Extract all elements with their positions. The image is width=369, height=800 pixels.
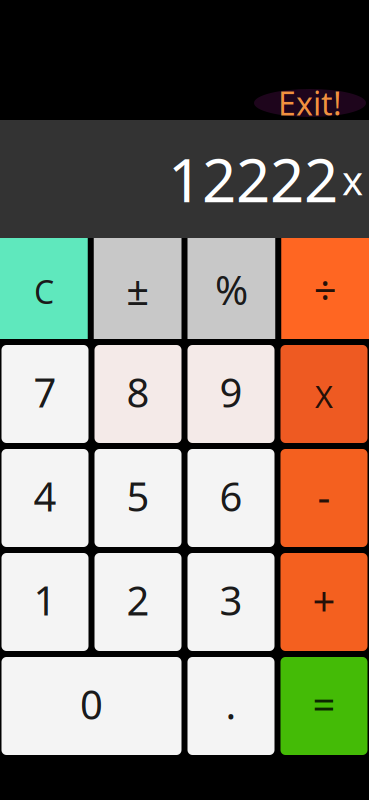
button[interactable]: 6 [187, 449, 274, 547]
staticText: 1 [33, 573, 56, 627]
staticText: 7 [33, 365, 56, 419]
button[interactable]: 5 [94, 449, 181, 547]
button[interactable]: - [280, 449, 367, 547]
staticText: . [225, 677, 236, 731]
button[interactable]: = [280, 657, 367, 755]
staticText: 6 [219, 469, 242, 523]
button[interactable]: 2 [94, 553, 181, 651]
button[interactable]: 4 [1, 449, 88, 547]
staticText: 12222 [168, 138, 338, 220]
staticText: 8 [126, 365, 149, 419]
button[interactable]: 3 [187, 553, 274, 651]
button[interactable]: C [0, 238, 88, 339]
staticText: 2 [126, 573, 149, 627]
button[interactable]: % [187, 238, 275, 339]
staticText: X [315, 375, 333, 417]
button[interactable]: Exit! [254, 89, 366, 117]
button[interactable]: ÷ [281, 238, 369, 339]
button[interactable]: 1 [1, 553, 88, 651]
button[interactable]: 0 [1, 657, 181, 755]
button[interactable]: 8 [94, 345, 181, 443]
staticText: Exit! [278, 81, 342, 125]
button[interactable]: + [280, 553, 367, 651]
button[interactable]: 9 [187, 345, 274, 443]
staticText: - [317, 469, 330, 523]
staticText: 3 [219, 573, 242, 627]
button[interactable]: 7 [1, 345, 88, 443]
staticText: C [34, 270, 54, 313]
staticText: 4 [33, 469, 56, 523]
button[interactable]: ± [94, 238, 182, 339]
staticText: % [215, 262, 248, 317]
staticText: 5 [126, 469, 149, 523]
staticText: ± [126, 262, 149, 317]
staticText: x [342, 152, 363, 207]
staticText: ÷ [314, 262, 337, 317]
button[interactable]: X [280, 345, 367, 443]
staticText: = [312, 677, 335, 731]
staticText: 9 [219, 365, 242, 419]
staticText: 0 [80, 677, 103, 731]
button[interactable]: . [187, 657, 274, 755]
staticText: + [312, 573, 335, 627]
